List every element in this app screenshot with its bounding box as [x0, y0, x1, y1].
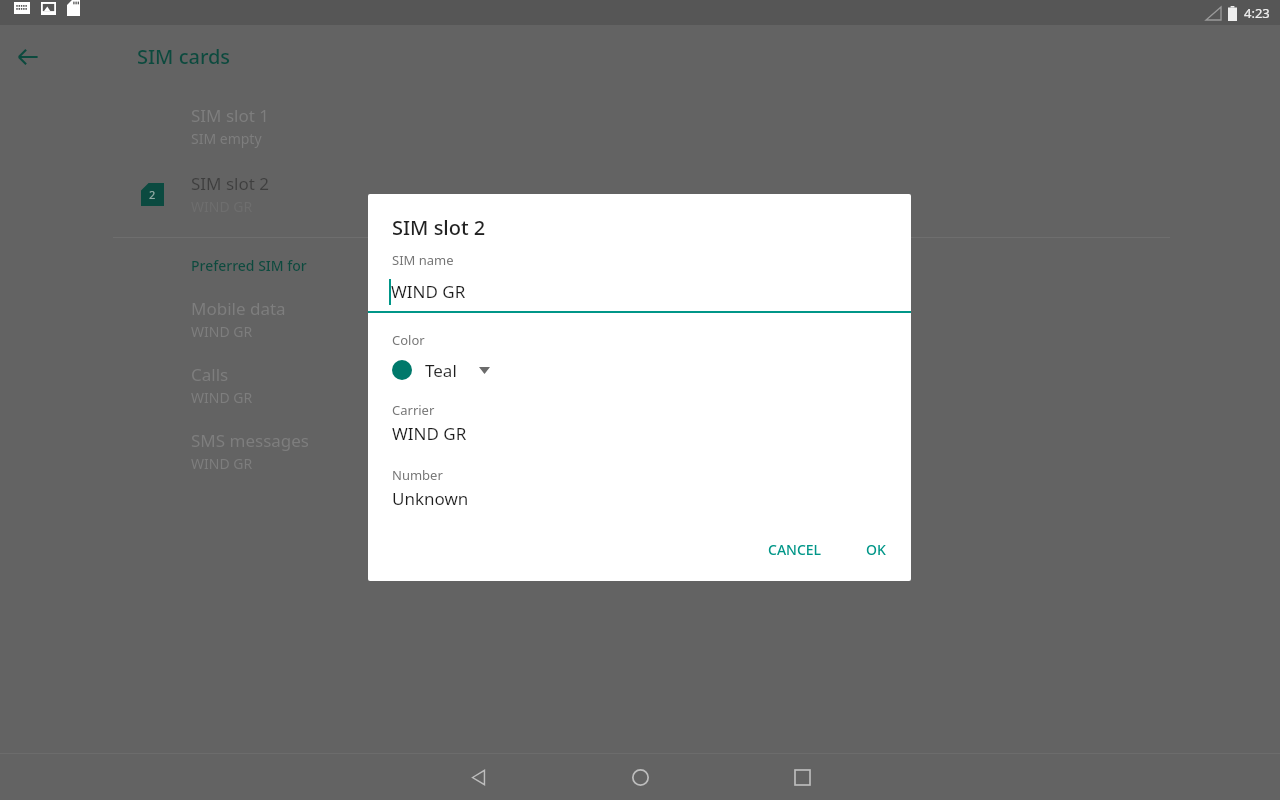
staticText: SIM slot 2	[191, 172, 270, 195]
button[interactable]: OK	[854, 531, 898, 568]
staticText: WIND GR	[391, 280, 466, 303]
staticText: Preferred SIM for	[191, 256, 307, 275]
staticText: WIND GR	[191, 322, 253, 341]
staticText: WIND GR	[191, 197, 253, 216]
button[interactable]: Calls	[0, 349, 1280, 415]
button[interactable]: CANCEL	[756, 531, 834, 568]
button[interactable]: SMS messages	[0, 415, 1280, 481]
button[interactable]: Navigate up	[10, 39, 46, 75]
staticText: Unknown	[392, 487, 469, 510]
staticText: SIM slot 2	[392, 214, 486, 241]
staticText: Number	[392, 466, 443, 484]
button[interactable]: Mobile data	[0, 297, 1280, 349]
staticText: WIND GR	[392, 422, 467, 445]
staticText: Carrier	[392, 401, 435, 419]
button[interactable]: Back	[455, 754, 501, 800]
staticText: SIM name	[392, 251, 454, 269]
staticText: SIM slot 1	[191, 104, 270, 127]
staticText: WIND GR	[191, 454, 253, 473]
button[interactable]: Teal	[392, 355, 490, 385]
staticText: WIND GR	[191, 388, 253, 407]
button[interactable]: Home	[617, 754, 663, 800]
staticText: Mobile data	[191, 297, 286, 320]
staticText: 4:23	[1244, 4, 1270, 22]
staticText: SMS messages	[191, 429, 309, 452]
staticText: Color	[392, 331, 425, 349]
button[interactable]: WIND GR	[368, 276, 911, 307]
staticText: 2	[149, 187, 156, 202]
staticText: Teal	[425, 359, 457, 382]
button[interactable]: 2	[0, 156, 1280, 224]
staticText: OK	[866, 540, 886, 559]
staticText: Calls	[191, 363, 229, 386]
staticText: SIM empty	[191, 129, 262, 148]
staticText: SIM cards	[137, 43, 231, 70]
button[interactable]: Recent apps	[779, 754, 825, 800]
staticText: CANCEL	[768, 540, 822, 559]
